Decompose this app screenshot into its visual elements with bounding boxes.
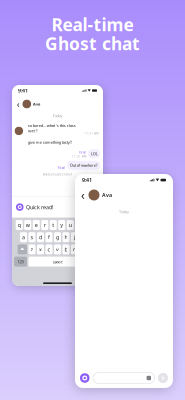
staticText: so bored… what's this class over? [28, 123, 76, 133]
staticText: space [52, 259, 62, 264]
staticText: Ava took a screenshot [43, 173, 72, 176]
staticText: t [52, 221, 54, 229]
staticText: ‹ [81, 187, 85, 203]
staticText: q [18, 221, 21, 229]
staticText: Today [52, 113, 62, 118]
staticText: Ghost chat [45, 32, 140, 55]
staticText: Read [79, 151, 86, 154]
button[interactable]: Camera [80, 373, 89, 383]
staticText: Ava [102, 191, 112, 199]
staticText: Ava [33, 101, 40, 107]
staticText: 123 [17, 259, 23, 264]
staticText: h [64, 234, 67, 241]
staticText: a [22, 234, 25, 241]
button[interactable]: Back [15, 97, 21, 110]
staticText: z [30, 246, 33, 253]
button[interactable]: Message [93, 372, 154, 383]
staticText: f [48, 234, 50, 241]
staticText: Quick read! [26, 204, 53, 211]
staticText: Today [119, 209, 129, 214]
staticText: 11:31 AM [72, 155, 86, 158]
staticText: LOL [91, 151, 98, 156]
staticText: ‹ [17, 98, 20, 110]
staticText: d [39, 234, 42, 241]
staticText: j [74, 234, 75, 241]
staticText: s [30, 234, 33, 241]
staticText: 11:31 AM [84, 132, 98, 135]
staticText: Read [58, 166, 65, 170]
staticText: u [69, 221, 72, 229]
staticText: e [35, 221, 38, 229]
staticText: y [60, 221, 63, 229]
staticText: b [64, 246, 67, 253]
staticText: give me something tasty!! [28, 139, 72, 145]
staticText: w [26, 221, 30, 229]
staticText: 9:41 [82, 176, 92, 184]
staticText: Real-time [51, 13, 133, 36]
staticText: c [47, 246, 50, 253]
staticText: x [39, 246, 42, 253]
staticText: 9:41 [18, 87, 28, 94]
button[interactable]: Back [79, 187, 86, 202]
staticText: Out of nowhere? [70, 163, 98, 168]
staticText: g [56, 234, 59, 241]
staticText: v [56, 246, 59, 253]
staticText: r [44, 221, 46, 229]
staticText: n [73, 246, 76, 253]
button[interactable]: Send [158, 373, 168, 383]
